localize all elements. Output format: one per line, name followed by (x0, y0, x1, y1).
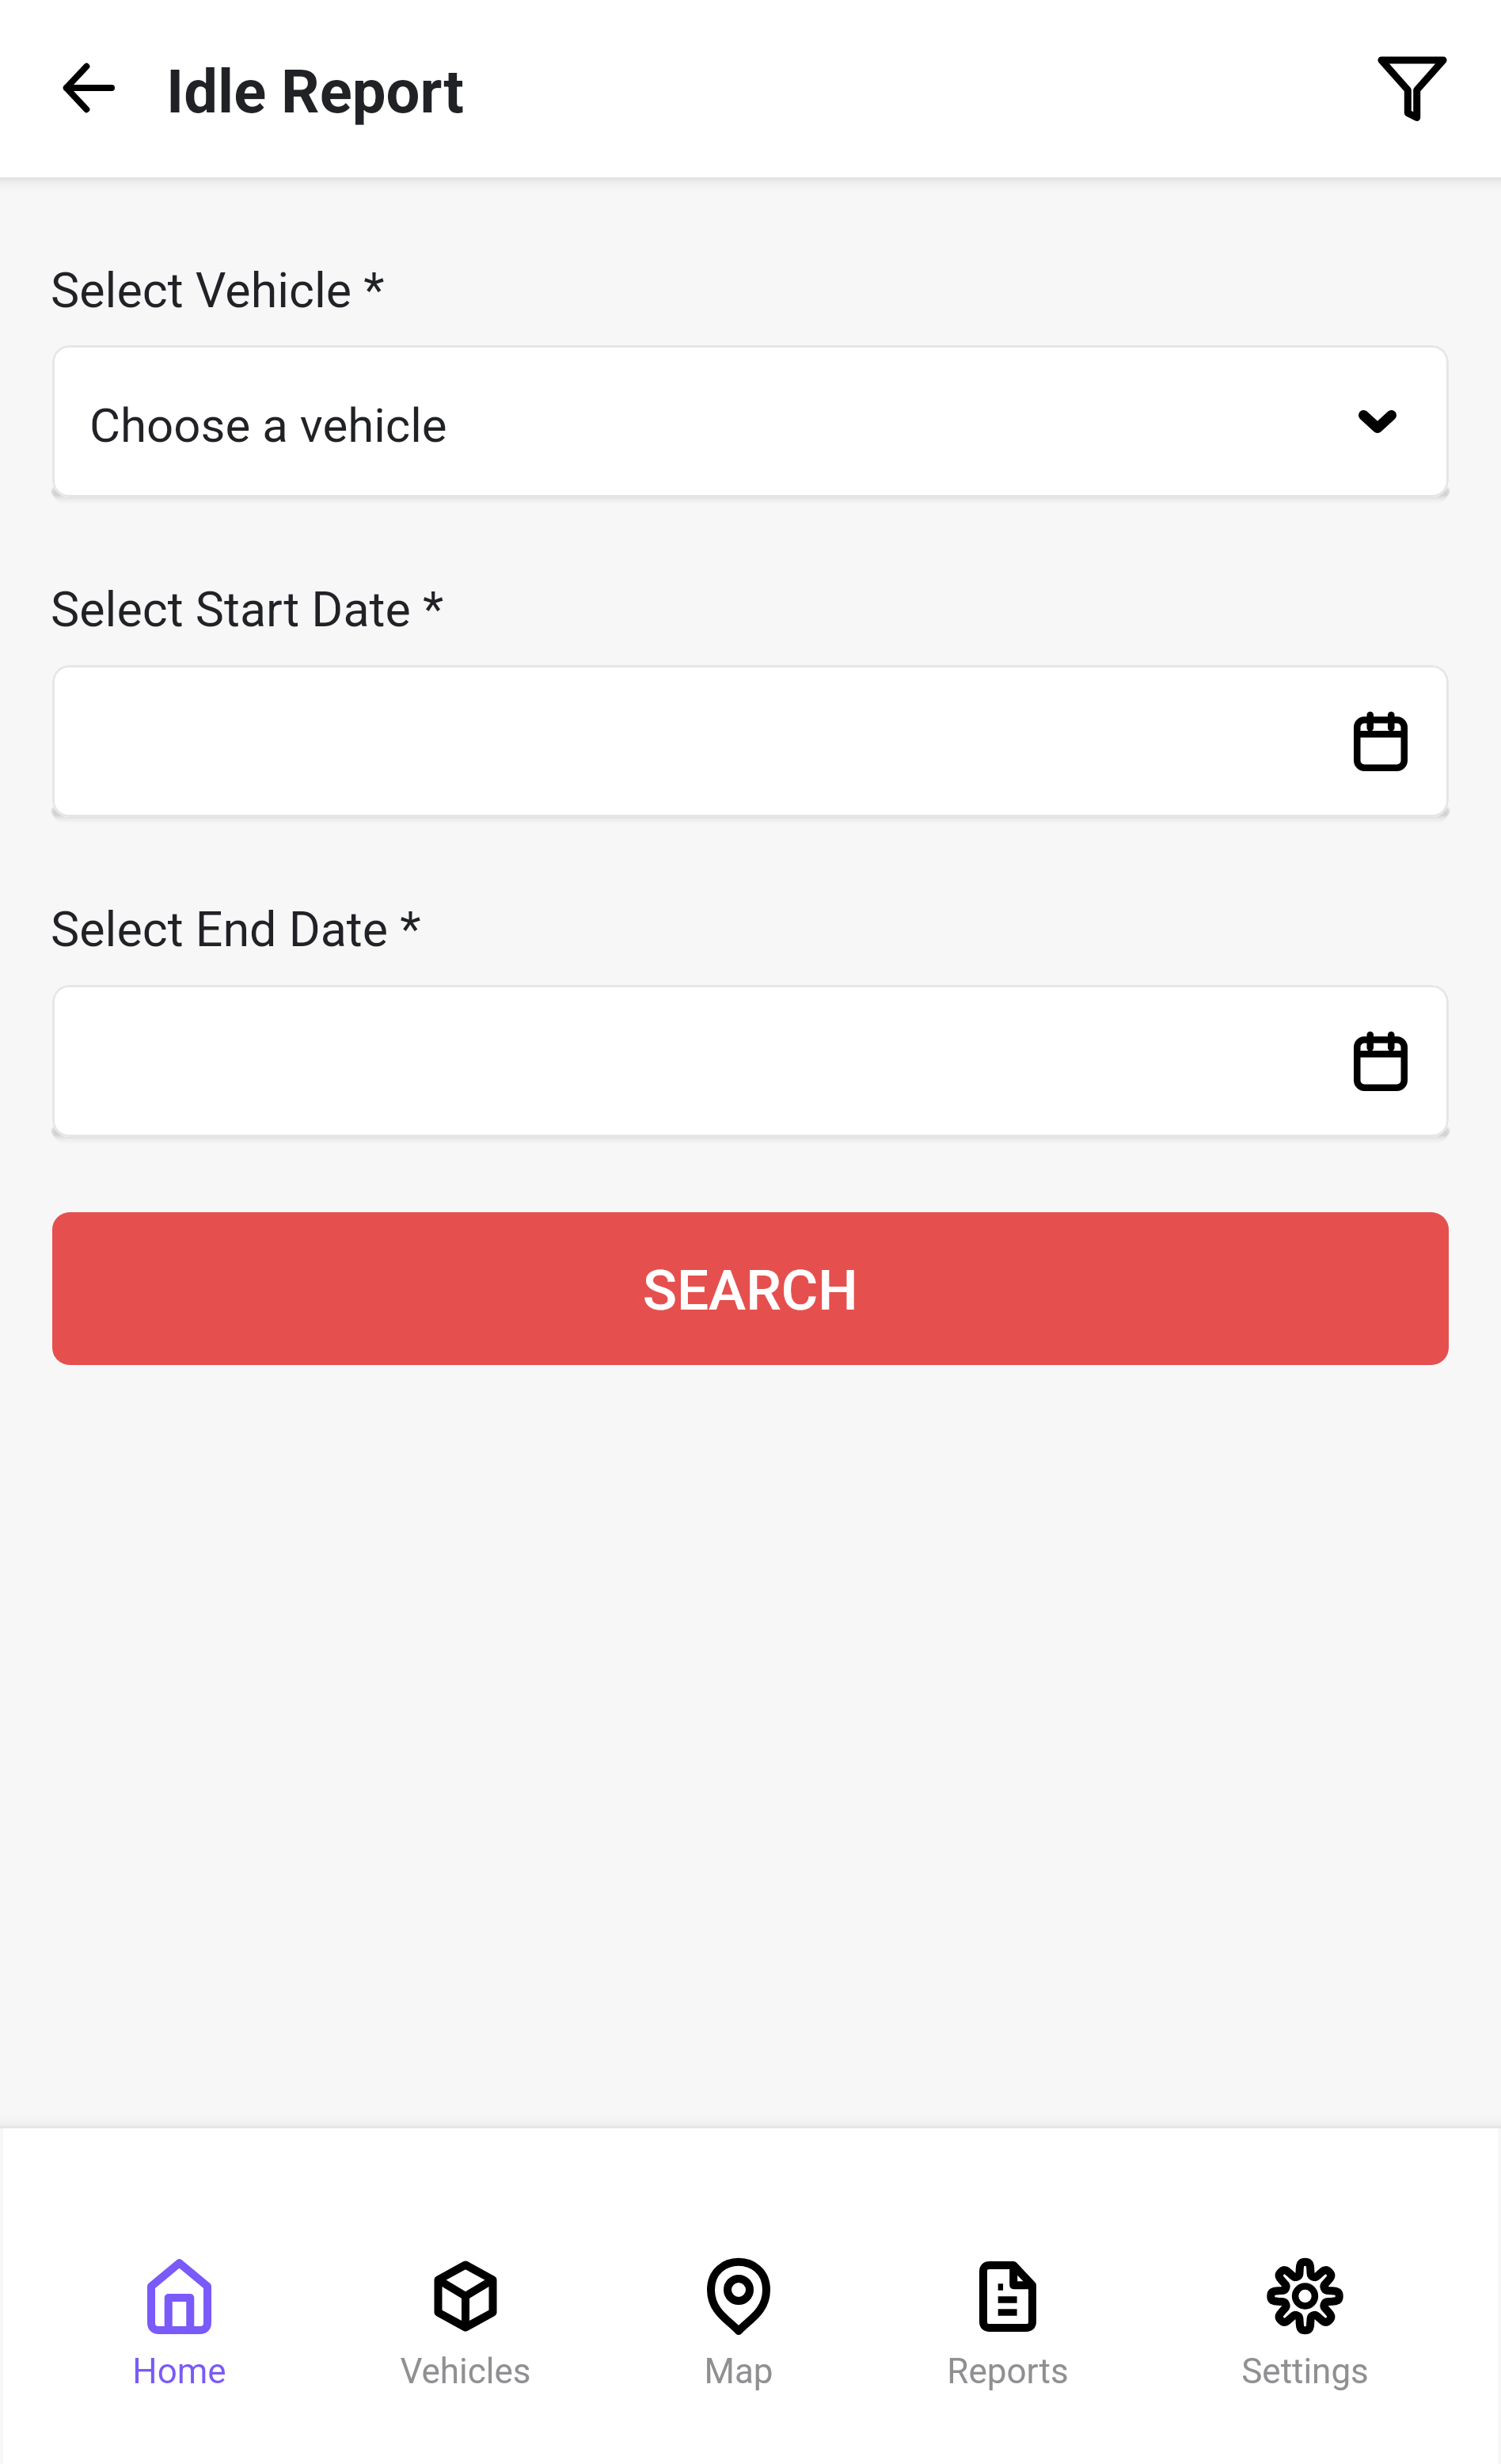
staticText: Idle Report (166, 56, 464, 127)
button[interactable]: Vehicles (400, 2257, 531, 2392)
button[interactable] (52, 665, 1449, 817)
button[interactable]: Choose a vehicle (52, 345, 1449, 497)
staticText: Map (704, 2351, 773, 2392)
staticText: Home (132, 2351, 226, 2392)
staticText: Choose a vehicle (89, 397, 447, 453)
staticText: SEARCH (643, 1257, 858, 1323)
button[interactable]: Home (132, 2257, 226, 2392)
button[interactable]: SEARCH (52, 1212, 1449, 1365)
staticText: Vehicles (400, 2351, 531, 2392)
staticText: Reports (947, 2351, 1069, 2392)
button[interactable]: Reports (947, 2257, 1069, 2392)
button[interactable]: Settings (1241, 2257, 1369, 2392)
button[interactable]: Filter (1369, 45, 1456, 132)
button[interactable]: Map (704, 2257, 773, 2392)
staticText: Select Vehicle * (51, 262, 385, 318)
button[interactable]: Back (45, 44, 132, 131)
staticText: Settings (1241, 2351, 1369, 2392)
button[interactable] (52, 985, 1449, 1137)
staticText: Select End Date * (51, 901, 421, 957)
staticText: Select Start Date * (51, 581, 444, 637)
